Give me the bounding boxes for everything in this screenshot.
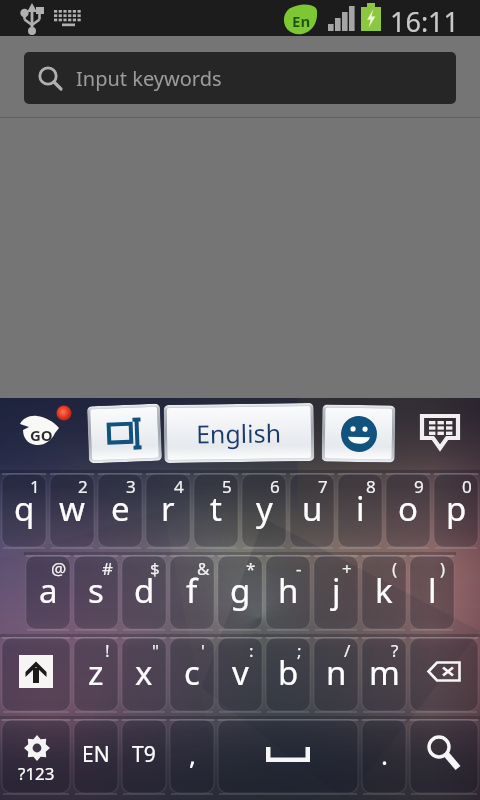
staticText: z: [88, 650, 104, 695]
button[interactable]: 4: [144, 470, 192, 552]
staticText: 5: [222, 475, 232, 498]
staticText: @: [51, 557, 67, 580]
button[interactable]: $: [120, 552, 168, 634]
staticText: s: [88, 568, 104, 613]
button[interactable]: 0: [432, 470, 480, 552]
staticText: +: [342, 557, 352, 580]
staticText: $: [150, 557, 160, 580]
staticText: /: [344, 639, 351, 662]
button[interactable]: (: [360, 552, 408, 634]
button[interactable]: ;: [264, 634, 312, 716]
staticText: e: [111, 486, 130, 531]
staticText: i: [356, 486, 365, 531]
button[interactable]: [325, 407, 392, 459]
button[interactable]: -: [264, 552, 312, 634]
button[interactable]: Hide keyboard: [404, 406, 476, 462]
button[interactable]: .: [360, 716, 408, 798]
button[interactable]: 9: [384, 470, 432, 552]
button[interactable]: 2: [48, 470, 96, 552]
staticText: o: [398, 486, 418, 531]
staticText: 7: [318, 475, 328, 498]
button[interactable]: #: [72, 552, 120, 634]
button[interactable]: English: [167, 406, 311, 460]
button[interactable]: *: [216, 552, 264, 634]
staticText: d: [134, 568, 155, 613]
staticText: n: [326, 650, 347, 695]
button[interactable]: /: [312, 634, 360, 716]
staticText: 2: [78, 475, 88, 498]
staticText: r: [161, 486, 175, 531]
button[interactable]: Backspace: [408, 634, 480, 716]
staticText: ": [152, 639, 159, 662]
staticText: -: [296, 557, 302, 580]
staticText: (: [392, 557, 398, 580]
staticText: ?: [391, 639, 399, 662]
button[interactable]: 7: [288, 470, 336, 552]
staticText: ;: [297, 639, 302, 662]
staticText: g: [230, 568, 251, 613]
button[interactable]: ": [120, 634, 168, 716]
staticText: w: [59, 486, 85, 531]
button[interactable]: ': [168, 634, 216, 716]
staticText: 9: [414, 475, 424, 498]
staticText: GO: [30, 425, 53, 445]
staticText: Input keywords: [76, 65, 222, 92]
staticText: 0: [462, 475, 472, 498]
staticText: 6: [270, 475, 280, 498]
staticText: English: [196, 415, 282, 451]
staticText: En: [292, 11, 311, 31]
button[interactable]: +: [312, 552, 360, 634]
button[interactable]: Shift: [0, 634, 72, 716]
staticText: v: [232, 650, 249, 695]
button[interactable]: !: [72, 634, 120, 716]
staticText: 8: [366, 475, 376, 498]
staticText: !: [105, 639, 110, 662]
button[interactable]: 6: [240, 470, 288, 552]
button[interactable]: @: [24, 552, 72, 634]
button[interactable]: 8: [336, 470, 384, 552]
staticText: 4: [174, 475, 184, 498]
button[interactable]: [90, 407, 159, 460]
staticText: u: [302, 486, 323, 531]
staticText: 1: [30, 475, 40, 498]
staticText: a: [39, 568, 58, 613]
staticText: ?123: [18, 762, 55, 785]
staticText: j: [332, 568, 341, 613]
button[interactable]: Search: [408, 716, 480, 798]
button[interactable]: ?: [360, 634, 408, 716]
staticText: *: [246, 557, 256, 580]
staticText: m: [369, 650, 400, 695]
button[interactable]: GO Keyboard menu: [14, 404, 76, 452]
button[interactable]: Space: [216, 716, 360, 798]
staticText: T9: [132, 740, 156, 769]
staticText: ': [201, 639, 205, 662]
staticText: y: [256, 486, 273, 531]
staticText: c: [184, 650, 200, 695]
staticText: t: [210, 486, 222, 531]
button[interactable]: &: [168, 552, 216, 634]
staticText: 16:11: [390, 3, 460, 39]
staticText: k: [375, 568, 393, 613]
staticText: ,: [189, 737, 196, 772]
button[interactable]: T9: [120, 716, 168, 798]
staticText: b: [278, 650, 299, 695]
staticText: &: [197, 557, 210, 580]
button[interactable]: :: [216, 634, 264, 716]
staticText: h: [278, 568, 299, 613]
button[interactable]: 5: [192, 470, 240, 552]
staticText: 3: [126, 475, 136, 498]
button[interactable]: Symbols: [0, 716, 72, 798]
button[interactable]: Input keywords: [24, 52, 456, 104]
button[interactable]: ): [408, 552, 456, 634]
button[interactable]: EN: [72, 716, 120, 798]
staticText: :: [249, 639, 254, 662]
staticText: l: [428, 568, 437, 613]
staticText: ): [440, 557, 446, 580]
button[interactable]: ,: [168, 716, 216, 798]
staticText: x: [135, 650, 153, 695]
staticText: #: [102, 557, 113, 580]
button[interactable]: 1: [0, 470, 48, 552]
staticText: .: [381, 737, 388, 772]
staticText: p: [446, 486, 467, 531]
button[interactable]: 3: [96, 470, 144, 552]
